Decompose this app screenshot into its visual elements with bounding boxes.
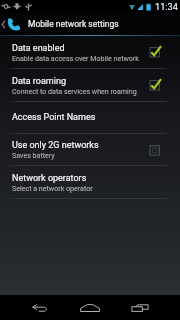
button[interactable]: Network operators (0, 166, 180, 198)
button[interactable]: Back (15, 295, 65, 320)
staticText: Data roaming (12, 76, 66, 87)
staticText: Enable data access over Mobile network (12, 54, 139, 62)
staticText: Saves battery (12, 151, 55, 159)
button[interactable]: Navigate up (0, 13, 20, 35)
staticText: Data enabled (12, 43, 65, 54)
button[interactable]: Recent apps (115, 295, 165, 320)
button[interactable]: Data roaming (0, 69, 180, 101)
other: Navigate up (1, 20, 6, 29)
button[interactable]: Use only 2G networks (140, 134, 180, 165)
staticText: Select a network operator (12, 184, 93, 192)
button[interactable]: Use only 2G networks (0, 134, 180, 165)
staticText: Access Point Names (12, 112, 96, 123)
staticText: Use only 2G networks (12, 140, 99, 151)
staticText: Mobile network settings (28, 19, 119, 29)
button[interactable]: Data enabled (140, 36, 180, 68)
button[interactable]: Home (65, 295, 115, 320)
button[interactable]: Data roaming (140, 69, 180, 101)
button[interactable]: Data enabled (0, 36, 180, 68)
staticText: 11:34 (155, 1, 178, 12)
button[interactable]: Access Point Names (0, 102, 180, 133)
staticText: Network operators (12, 173, 87, 184)
staticText: Connect to data services when roaming (12, 87, 137, 95)
